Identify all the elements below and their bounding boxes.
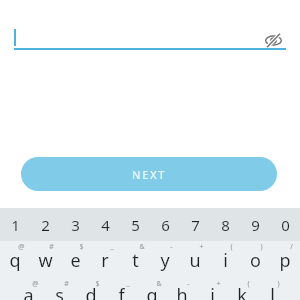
staticText: @ xyxy=(18,242,25,252)
staticText: q xyxy=(9,248,21,273)
button[interactable]: # xyxy=(44,279,75,300)
button[interactable]: y xyxy=(150,241,180,279)
button[interactable]: p xyxy=(270,241,300,279)
staticText: & xyxy=(139,242,145,252)
button[interactable]: u xyxy=(180,241,210,279)
staticText: $ xyxy=(95,279,100,289)
button[interactable]: _ xyxy=(106,279,137,300)
button[interactable]: 3 xyxy=(60,208,90,241)
staticText: - xyxy=(187,279,190,289)
staticText: p xyxy=(279,248,291,273)
button[interactable]: w xyxy=(30,241,60,279)
staticText: s xyxy=(55,283,64,300)
staticText: ( xyxy=(247,279,250,289)
staticText: j xyxy=(210,283,215,300)
staticText: y xyxy=(160,248,170,273)
button[interactable]: $ xyxy=(75,279,106,300)
button[interactable]: 6 xyxy=(150,208,180,241)
staticText: 9 xyxy=(251,215,260,235)
button[interactable]: t xyxy=(120,241,150,279)
staticText: w xyxy=(38,248,53,273)
staticText: 4 xyxy=(101,215,110,235)
staticText: ) xyxy=(260,242,263,252)
staticText: t xyxy=(132,248,139,273)
button[interactable]: Toggle password visibility xyxy=(0,0,300,52)
staticText: ( xyxy=(230,242,233,252)
staticText: h xyxy=(176,283,188,300)
button[interactable]: + xyxy=(197,279,227,300)
staticText: @ xyxy=(32,279,39,289)
staticText: 6 xyxy=(161,215,170,235)
button[interactable]: @ xyxy=(13,279,44,300)
staticText: f xyxy=(118,283,125,300)
button[interactable]: e xyxy=(60,241,90,279)
staticText: NEXT xyxy=(132,167,166,182)
staticText: / xyxy=(290,242,293,252)
staticText: e xyxy=(70,248,81,273)
button[interactable]: 8 xyxy=(210,208,240,241)
button[interactable]: 9 xyxy=(240,208,270,241)
staticText: # xyxy=(49,242,54,252)
button[interactable]: 2 xyxy=(30,208,60,241)
button[interactable]: r xyxy=(90,241,120,279)
button[interactable]: 1 xyxy=(0,208,30,241)
button[interactable]: o xyxy=(240,241,270,279)
staticText: + xyxy=(199,242,204,252)
staticText: 2 xyxy=(41,215,50,235)
staticText: 8 xyxy=(221,215,230,235)
staticText: # xyxy=(64,279,69,289)
staticText: - xyxy=(170,242,173,252)
button[interactable]: Toggle password visibility xyxy=(260,28,286,52)
staticText: l xyxy=(270,283,275,300)
staticText: _ xyxy=(126,279,130,289)
button[interactable]: NEXT xyxy=(21,157,277,191)
button[interactable]: 7 xyxy=(180,208,210,241)
staticText: ) xyxy=(277,279,280,289)
staticText: g xyxy=(146,283,158,300)
button[interactable]: 0 xyxy=(270,208,300,241)
staticText: 1 xyxy=(11,215,20,235)
staticText: o xyxy=(250,248,261,273)
staticText: $ xyxy=(79,242,84,252)
staticText: i xyxy=(223,248,228,273)
staticText: a xyxy=(23,283,34,300)
staticText: 0 xyxy=(281,215,290,235)
staticText: r xyxy=(101,248,109,273)
staticText: d xyxy=(85,283,97,300)
button[interactable]: q xyxy=(0,241,30,279)
staticText: _ xyxy=(110,242,114,252)
button[interactable]: i xyxy=(210,241,240,279)
staticText: 5 xyxy=(131,215,140,235)
button[interactable]: - xyxy=(167,279,197,300)
staticText: u xyxy=(189,248,201,273)
button[interactable]: & xyxy=(137,279,167,300)
button[interactable]: ( xyxy=(227,279,257,300)
button[interactable]: 4 xyxy=(90,208,120,241)
button[interactable]: 5 xyxy=(120,208,150,241)
staticText: + xyxy=(216,279,221,289)
staticText: 7 xyxy=(191,215,200,235)
button[interactable]: ) xyxy=(257,279,287,300)
staticText: & xyxy=(156,279,162,289)
staticText: 3 xyxy=(71,215,80,235)
staticText: k xyxy=(237,283,247,300)
